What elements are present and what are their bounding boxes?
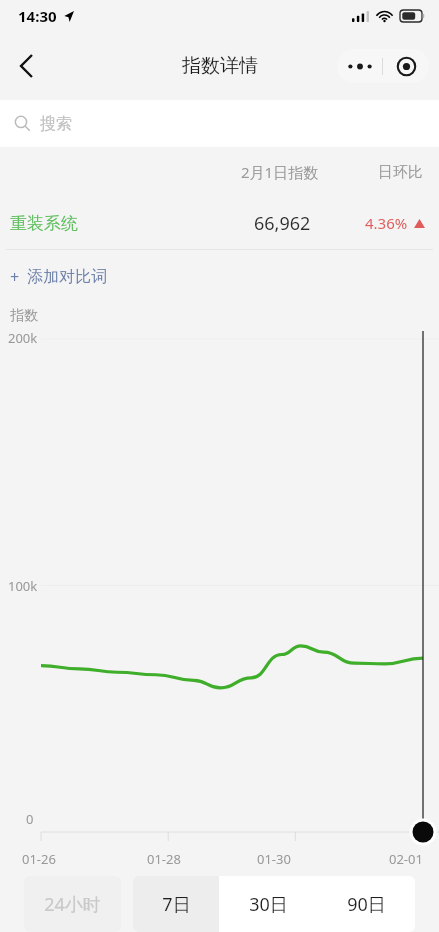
staticText: 添加对比词 bbox=[27, 267, 107, 287]
staticText: 指数 bbox=[10, 307, 38, 325]
staticText: 14:30 bbox=[18, 6, 57, 26]
staticText: 搜索 bbox=[40, 114, 72, 134]
button[interactable]: 7日 bbox=[133, 876, 219, 932]
staticText: 01-28 bbox=[147, 850, 181, 868]
staticText: 200k bbox=[8, 329, 38, 347]
button[interactable]: 重装系统 bbox=[0, 197, 439, 249]
button[interactable]: Back bbox=[0, 40, 52, 92]
button[interactable]: 24小时 bbox=[24, 876, 121, 932]
button[interactable]: 搜索 bbox=[0, 100, 439, 147]
staticText: 24小时 bbox=[44, 892, 101, 917]
staticText: 4.36% bbox=[365, 213, 408, 233]
staticText: 02-01 bbox=[389, 850, 423, 868]
button[interactable]: 30日 bbox=[219, 876, 317, 932]
button[interactable]: More bbox=[337, 49, 382, 83]
staticText: 100k bbox=[8, 577, 38, 595]
button[interactable]: + bbox=[0, 250, 439, 303]
staticText: 01-30 bbox=[257, 850, 291, 868]
staticText: 日环比 bbox=[378, 163, 423, 182]
staticText: 66,962 bbox=[254, 211, 311, 236]
staticText: + bbox=[10, 266, 20, 288]
button[interactable]: Close bbox=[383, 49, 429, 83]
staticText: 重装系统 bbox=[10, 213, 78, 234]
staticText: 指数详情 bbox=[182, 54, 258, 78]
staticText: 2月1日指数 bbox=[241, 162, 319, 182]
staticText: 01-26 bbox=[22, 850, 56, 868]
staticText: 30日 bbox=[249, 892, 288, 917]
staticText: 7日 bbox=[162, 892, 191, 917]
staticText: 0 bbox=[26, 810, 34, 828]
staticText: 90日 bbox=[347, 892, 386, 917]
button[interactable]: 90日 bbox=[317, 876, 415, 932]
